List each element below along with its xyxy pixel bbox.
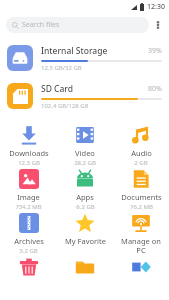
staticText: 734.2 MB (15, 203, 42, 209)
button[interactable]: Search files (6, 17, 149, 33)
staticText: Archives (14, 236, 44, 246)
other: Video (75, 125, 95, 145)
other: Audio (131, 125, 151, 145)
staticText: 28.2 GB (74, 159, 96, 165)
button[interactable]: Other (113, 253, 169, 297)
staticText: Audio (131, 148, 152, 158)
staticText: 76.2 MB (130, 203, 153, 209)
other: Trash (19, 257, 39, 277)
staticText: 12:30 (147, 2, 165, 12)
other: Image (19, 169, 39, 189)
staticText: My Favorite (65, 236, 106, 246)
staticText: 2 GB (134, 159, 148, 165)
other: My Favorite (75, 213, 95, 233)
other: Apps (75, 169, 95, 189)
other: Archives (19, 213, 39, 233)
button[interactable]: Documents (113, 165, 169, 209)
staticText: 39% (148, 46, 162, 56)
staticText: Search files (22, 20, 60, 30)
button[interactable]: SD Card (0, 77, 169, 115)
staticText: Apps (76, 192, 94, 202)
staticText: 102.4 GB/128 GB (41, 102, 89, 110)
other: Manage on PC (131, 213, 151, 233)
button[interactable]: Video (57, 121, 113, 165)
staticText: 3.2 GB (19, 247, 38, 253)
staticText: 12.3 GB (18, 159, 40, 165)
button[interactable]: Archives (0, 209, 57, 253)
staticText: Downloads (9, 148, 49, 158)
other: Folder (75, 257, 95, 277)
button[interactable]: Image (0, 165, 57, 209)
button[interactable]: Trash (0, 253, 57, 297)
staticText: 12.5 GB/32 GB (41, 64, 82, 72)
button[interactable]: My Favorite (57, 209, 113, 253)
staticText: SD Card (41, 83, 74, 95)
button[interactable]: Downloads (0, 121, 57, 165)
staticText: Video (75, 148, 95, 158)
staticText: Manage on PC (121, 236, 161, 253)
button[interactable]: Manage on PC (113, 209, 169, 253)
staticText: Internal Storage (41, 45, 108, 57)
staticText: 80% (148, 84, 162, 94)
button[interactable]: Apps (57, 165, 113, 209)
button[interactable]: More options (149, 16, 167, 34)
other: Other (131, 257, 151, 277)
button[interactable]: Folder (57, 253, 113, 297)
button[interactable]: Audio (113, 121, 169, 165)
staticText: Documents (121, 192, 162, 202)
staticText: Image (17, 192, 40, 202)
staticText: 6.2 GB (76, 203, 95, 209)
other: Documents (131, 169, 151, 189)
other: Downloads (19, 125, 39, 145)
button[interactable]: Internal Storage (0, 39, 169, 77)
